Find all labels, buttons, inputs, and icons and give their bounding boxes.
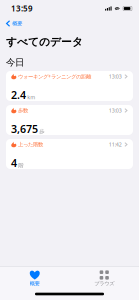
staticText: 階 bbox=[18, 162, 23, 169]
staticText: 4 bbox=[11, 156, 17, 170]
staticText: ブラウズ bbox=[94, 280, 114, 287]
staticText: すべてのデータ bbox=[6, 35, 83, 48]
staticText: 概要 bbox=[12, 20, 22, 27]
staticText: 2.4 bbox=[11, 88, 26, 102]
staticText: 13:03 bbox=[109, 107, 122, 114]
button[interactable]: 概要 bbox=[0, 266, 69, 289]
staticText: 13:59 bbox=[11, 3, 33, 14]
button[interactable]: 上った階数 bbox=[6, 139, 133, 169]
staticText: 概要 bbox=[30, 280, 40, 287]
staticText: 歩数 bbox=[18, 107, 28, 114]
button[interactable]: 歩数 bbox=[6, 105, 133, 135]
staticText: ウォーキング+ランニングの距離 bbox=[18, 73, 91, 80]
staticText: 今日 bbox=[6, 57, 24, 68]
staticText: 13:03 bbox=[109, 73, 122, 80]
button[interactable]: ブラウズ bbox=[69, 266, 139, 289]
staticText: km bbox=[27, 94, 35, 101]
staticText: 歩 bbox=[39, 128, 44, 135]
button[interactable]: 概要 bbox=[0, 18, 22, 29]
staticText: 3,675 bbox=[11, 122, 38, 136]
staticText: 11:42 bbox=[109, 141, 122, 148]
staticText: 上った階数 bbox=[18, 141, 43, 148]
button[interactable]: ウォーキング+ランニングの距離 bbox=[6, 71, 133, 101]
